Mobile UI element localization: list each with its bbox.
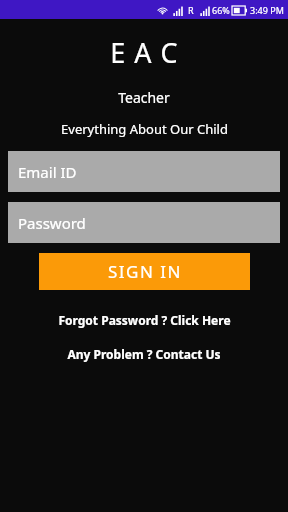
staticText: SIGN IN <box>108 260 182 283</box>
staticText: Forgot Password ? Click Here <box>58 312 231 328</box>
staticText: Password <box>18 213 86 233</box>
staticText: Everything About Our Child <box>61 120 228 138</box>
staticText: R <box>188 4 194 16</box>
button[interactable]: Password <box>8 202 280 243</box>
staticText: Email ID <box>18 162 77 182</box>
staticText: Teacher <box>118 88 170 107</box>
staticText: E A C <box>110 34 179 71</box>
button[interactable]: Any Problem ? Contact Us <box>0 346 288 362</box>
button[interactable]: SIGN IN <box>39 253 250 290</box>
staticText: 66% <box>212 4 230 16</box>
button[interactable]: Forgot Password ? Click Here <box>0 312 288 328</box>
staticText: Any Problem ? Contact Us <box>67 346 221 362</box>
button[interactable]: Email ID <box>8 151 280 192</box>
staticText: 3:49 PM <box>250 4 284 16</box>
